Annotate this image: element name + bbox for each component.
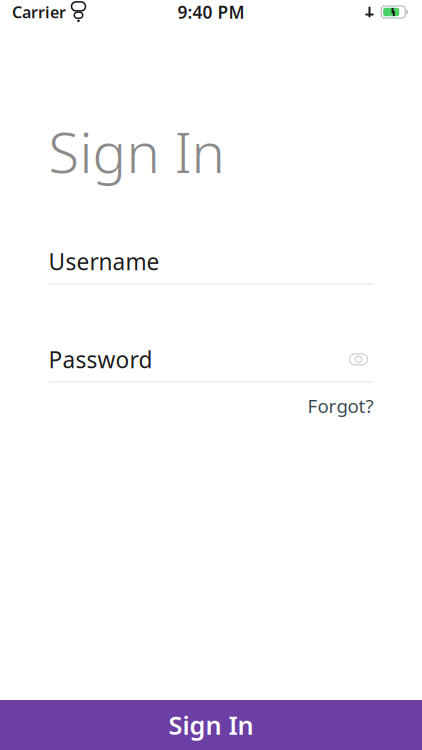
staticText: Username [48, 246, 159, 276]
staticText: Forgot? [307, 393, 373, 418]
button[interactable]: Forgot? [297, 382, 373, 422]
staticText: 9:40 PM [177, 0, 244, 23]
button[interactable]: Show password [343, 346, 373, 372]
staticText: Password [48, 344, 152, 374]
staticText: Sign In [48, 114, 224, 188]
staticText: Sign In [168, 708, 253, 742]
button[interactable]: Sign In [0, 700, 422, 750]
staticText: Carrier [12, 1, 66, 23]
